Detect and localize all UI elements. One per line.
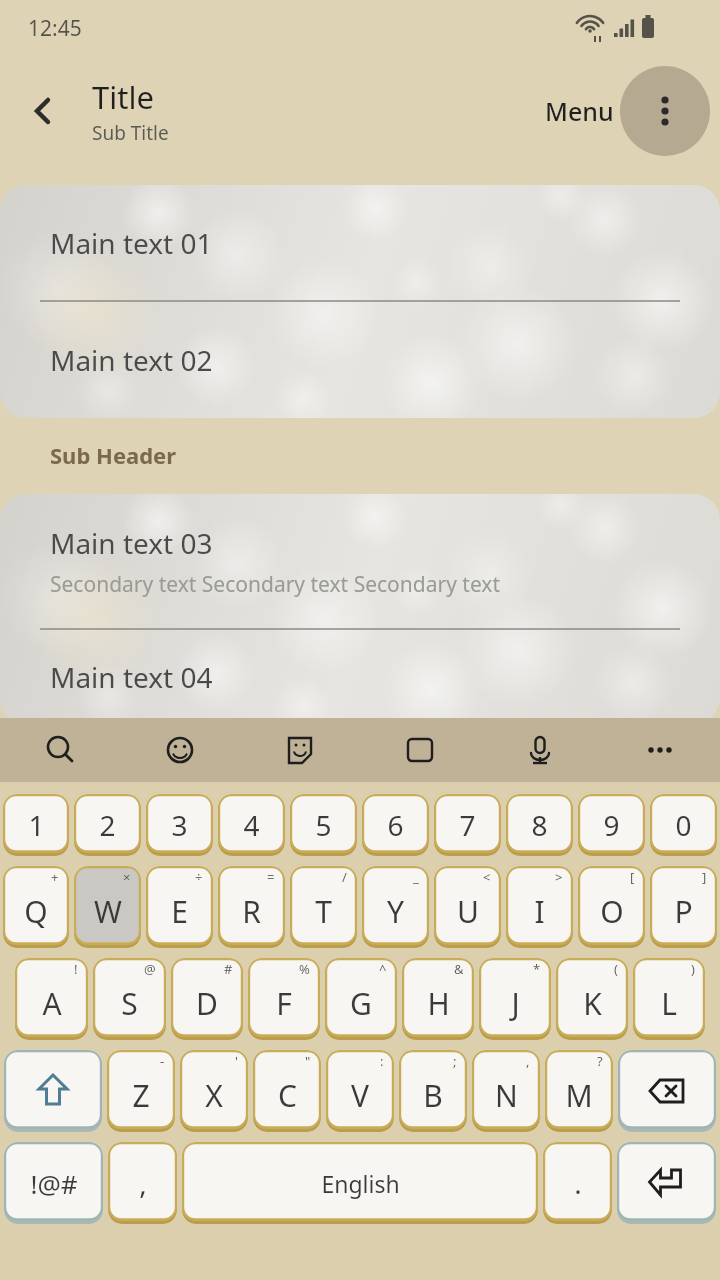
staticText: P: [674, 891, 693, 932]
staticText: 1: [28, 806, 45, 844]
staticText: L: [661, 983, 677, 1024]
staticText: %: [299, 960, 310, 978]
button[interactable]: More options: [620, 66, 710, 156]
button[interactable]: Backspace: [618, 1050, 716, 1132]
staticText: #: [224, 960, 233, 978]
button[interactable]: Menu: [539, 86, 620, 136]
button[interactable]: M: [545, 1050, 613, 1132]
staticText: Y: [387, 891, 404, 932]
staticText: +: [51, 868, 59, 886]
button[interactable]: V: [326, 1050, 394, 1132]
button[interactable]: 0: [650, 794, 717, 856]
staticText: N: [495, 1075, 518, 1116]
button[interactable]: Q: [3, 866, 69, 948]
staticText: <: [483, 868, 491, 886]
staticText: &: [454, 960, 464, 978]
staticText: English: [321, 1168, 400, 1199]
staticText: 12:45: [28, 14, 82, 43]
button[interactable]: D: [171, 958, 243, 1040]
button[interactable]: O: [578, 866, 645, 948]
button[interactable]: F: [248, 958, 320, 1040]
button[interactable]: !@#: [4, 1142, 103, 1224]
button[interactable]: Main text 02: [0, 302, 720, 418]
staticText: !: [74, 960, 78, 978]
button[interactable]: 1: [3, 794, 69, 856]
button[interactable]: Y: [362, 866, 429, 948]
button[interactable]: I: [506, 866, 573, 948]
staticText: D: [196, 983, 218, 1024]
button[interactable]: H: [402, 958, 474, 1040]
button[interactable]: L: [633, 958, 705, 1040]
staticText: @: [144, 960, 156, 978]
button[interactable]: Back: [14, 83, 70, 139]
staticText: 5: [315, 806, 332, 844]
button[interactable]: U: [434, 866, 501, 948]
button[interactable]: C: [253, 1050, 321, 1132]
button[interactable]: .: [543, 1142, 612, 1224]
button[interactable]: 8: [506, 794, 573, 856]
button[interactable]: K: [556, 958, 628, 1040]
staticText: ÷: [195, 868, 203, 886]
staticText: _: [413, 868, 419, 886]
button[interactable]: Emoji: [120, 718, 240, 782]
button[interactable]: More: [600, 718, 720, 782]
button[interactable]: Enter: [617, 1142, 716, 1224]
button[interactable]: S: [93, 958, 166, 1040]
button[interactable]: ,: [108, 1142, 177, 1224]
staticText: ?: [597, 1052, 603, 1070]
button[interactable]: 6: [362, 794, 429, 856]
button[interactable]: Main text 04: [0, 630, 720, 724]
button[interactable]: Stickers: [240, 718, 360, 782]
staticText: .: [574, 1164, 582, 1202]
staticText: W: [94, 891, 122, 932]
staticText: ^: [379, 960, 387, 978]
button[interactable]: W: [74, 866, 141, 948]
button[interactable]: Z: [107, 1050, 175, 1132]
staticText: -: [160, 1052, 165, 1070]
button[interactable]: 4: [218, 794, 285, 856]
button[interactable]: P: [650, 866, 717, 948]
button[interactable]: G: [325, 958, 397, 1040]
button[interactable]: Main text 03: [0, 494, 720, 629]
button[interactable]: T: [290, 866, 357, 948]
staticText: Sub Header: [50, 440, 177, 470]
staticText: Q: [24, 891, 48, 932]
button[interactable]: Shift: [4, 1050, 102, 1132]
button[interactable]: Search: [0, 718, 120, 782]
staticText: Sub Title: [92, 120, 169, 146]
staticText: 7: [459, 806, 476, 844]
staticText: Main text 03: [50, 524, 213, 562]
staticText: 0: [675, 806, 692, 844]
staticText: C: [278, 1075, 297, 1116]
staticText: Main text 01: [50, 224, 213, 262]
staticText: !@#: [30, 1166, 78, 1201]
staticText: H: [427, 983, 450, 1024]
button[interactable]: E: [146, 866, 213, 948]
staticText: S: [121, 983, 138, 1024]
staticText: Main text 04: [50, 658, 213, 696]
button[interactable]: 9: [578, 794, 645, 856]
button[interactable]: GIF: [360, 718, 480, 782]
button[interactable]: English: [182, 1142, 538, 1224]
staticText: J: [511, 983, 520, 1024]
button[interactable]: N: [472, 1050, 540, 1132]
button[interactable]: 3: [146, 794, 213, 856]
button[interactable]: A: [15, 958, 88, 1040]
staticText: 9: [603, 806, 620, 844]
button[interactable]: R: [218, 866, 285, 948]
button[interactable]: X: [180, 1050, 248, 1132]
staticText: 3: [171, 806, 188, 844]
staticText: Secondary text Secondary text Secondary …: [50, 570, 501, 599]
button[interactable]: J: [479, 958, 551, 1040]
button[interactable]: 7: [434, 794, 501, 856]
button[interactable]: Main text 01: [0, 185, 720, 301]
button[interactable]: 5: [290, 794, 357, 856]
button[interactable]: 2: [74, 794, 141, 856]
button[interactable]: B: [399, 1050, 467, 1132]
staticText: Menu: [545, 94, 614, 128]
staticText: U: [457, 891, 479, 932]
staticText: I: [534, 891, 545, 932]
staticText: :: [380, 1052, 384, 1070]
button[interactable]: Voice input: [480, 718, 600, 782]
staticText: Main text 02: [50, 341, 213, 379]
